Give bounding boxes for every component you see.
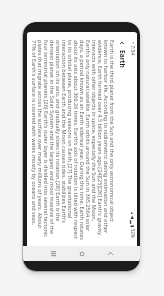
button[interactable]: Home <box>74 246 90 261</box>
staticText: ▴ ◀ ▂ ▮ 52% <box>130 212 136 238</box>
staticText: Earth <box>118 50 127 68</box>
staticText: • 7:54 <box>129 42 136 56</box>
button[interactable]: Back <box>117 38 127 48</box>
staticText: Earth is the third planet from the Sun a… <box>31 40 116 240</box>
button[interactable]: Recent apps <box>45 246 61 261</box>
button[interactable]: Back <box>102 246 118 261</box>
